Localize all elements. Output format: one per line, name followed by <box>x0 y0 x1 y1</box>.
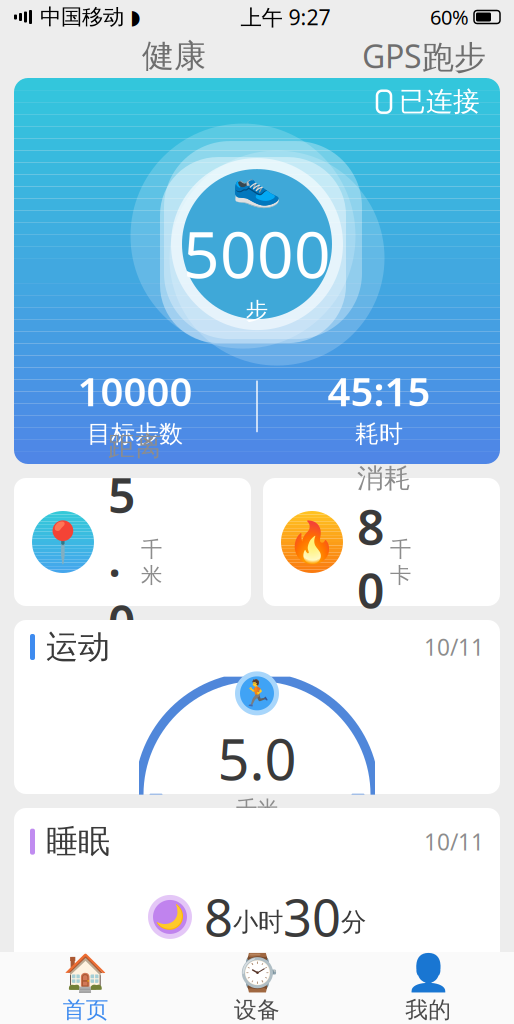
button[interactable]: 已连接 <box>373 81 484 122</box>
staticText: 消耗 <box>357 462 411 495</box>
staticText: 👤 <box>406 952 451 993</box>
staticText: 设备 <box>234 996 280 1024</box>
staticText: 千卡 <box>390 536 411 589</box>
staticText: 🏠 <box>63 952 108 993</box>
staticText: 距离 <box>108 430 162 463</box>
staticText: 5000 <box>183 211 331 296</box>
staticText: 📍 <box>38 519 88 565</box>
staticText: 10/11 <box>424 632 484 662</box>
staticText: 30 <box>283 883 341 951</box>
staticText: 45:15 <box>327 364 430 417</box>
staticText: 分 <box>341 906 366 937</box>
button[interactable]: 睡眠 <box>14 808 500 998</box>
staticText: 已连接 <box>399 85 480 118</box>
staticText: 10/11 <box>424 827 484 857</box>
staticText: 步 <box>245 297 268 325</box>
button[interactable]: 🏠 <box>0 952 171 1024</box>
button[interactable]: 距离 5.0 千米 <box>14 478 251 606</box>
button[interactable]: 👤 <box>343 952 514 1024</box>
staticText: 目标步数 <box>87 419 183 449</box>
staticText: 👟 <box>232 163 282 209</box>
staticText: 5.0 <box>217 721 296 796</box>
button[interactable]: 消耗 80 千卡 <box>263 478 500 606</box>
staticText: 我的 <box>405 996 451 1024</box>
staticText: 60% <box>430 4 469 30</box>
button[interactable]: GPS跑步 <box>348 29 500 83</box>
staticText: 80 <box>357 495 384 622</box>
staticText: 小时 <box>233 906 283 937</box>
staticText: ◗ <box>130 6 141 28</box>
staticText: 中国移动 <box>40 4 124 30</box>
staticText: 健康 <box>142 36 206 76</box>
staticText: 千米 <box>141 536 162 589</box>
button[interactable]: ⌚ <box>171 952 343 1024</box>
staticText: 5.0 <box>108 463 135 654</box>
staticText: 🌙 <box>155 903 185 931</box>
button[interactable]: 健康 <box>124 30 224 82</box>
staticText: 上午 9:27 <box>240 3 330 31</box>
staticText: 运动 <box>46 627 110 667</box>
staticText: GPS跑步 <box>362 35 486 77</box>
staticText: 10000 <box>77 364 192 417</box>
button[interactable]: 运动 <box>14 620 500 794</box>
staticText: 🔥 <box>287 519 337 565</box>
staticText: 🏃 <box>241 679 273 708</box>
staticText: 耗时 <box>355 419 403 449</box>
staticText: 首页 <box>63 996 109 1024</box>
staticText: ⌚ <box>234 952 279 993</box>
staticText: 8 <box>204 883 233 951</box>
staticText: 千米 <box>236 796 278 822</box>
staticText: 睡眠 <box>46 822 110 861</box>
